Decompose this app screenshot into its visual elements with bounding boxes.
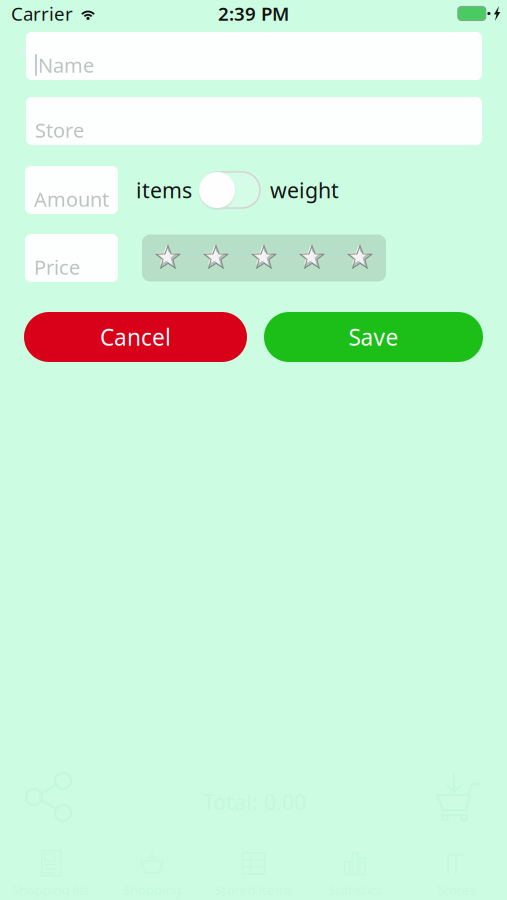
- button[interactable]: Name: [26, 32, 482, 80]
- staticText: Price: [34, 254, 80, 280]
- staticText: weight: [270, 176, 339, 204]
- button[interactable]: Cancel: [24, 312, 247, 362]
- staticText: Name: [38, 52, 94, 78]
- button[interactable]: Store: [26, 97, 482, 145]
- staticText: Cancel: [100, 322, 171, 352]
- staticText: Carrier: [11, 1, 73, 26]
- staticText: Save: [348, 322, 398, 352]
- button[interactable]: Toggle items or weight: [200, 172, 260, 208]
- staticText: Store: [35, 117, 84, 143]
- staticText: Amount: [34, 186, 109, 212]
- staticText: 2:39 PM: [218, 1, 289, 26]
- button[interactable]: Save: [264, 312, 483, 362]
- button[interactable]: Price: [25, 234, 118, 282]
- button[interactable]: Rating: [142, 234, 386, 281]
- staticText: items: [136, 176, 192, 204]
- button[interactable]: Amount: [25, 166, 118, 214]
